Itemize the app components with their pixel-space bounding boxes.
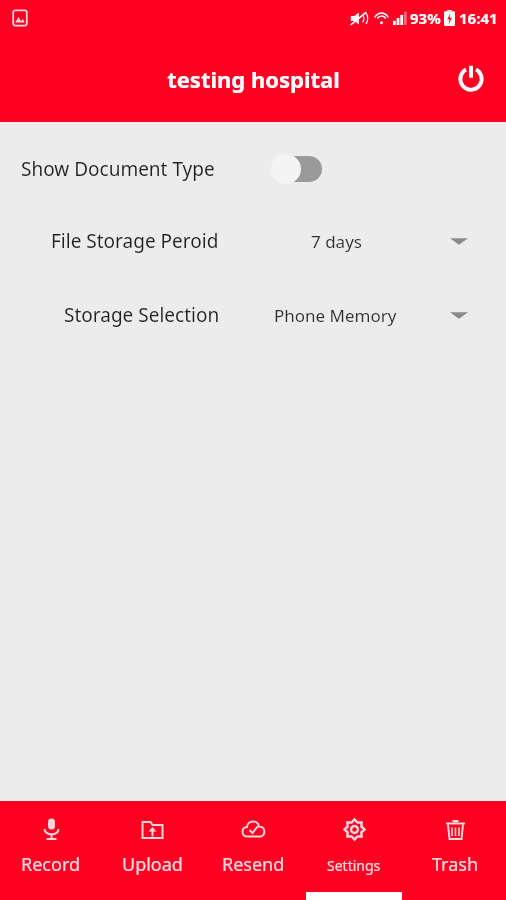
button[interactable]: Settings xyxy=(304,801,404,900)
staticText: 16:41 xyxy=(459,8,498,28)
button[interactable]: Storage Selection xyxy=(0,291,506,339)
staticText: Phone Memory xyxy=(274,304,397,327)
button[interactable]: Power / Logout xyxy=(448,56,494,102)
button[interactable]: Upload xyxy=(102,801,202,900)
staticText: Settings xyxy=(327,856,381,875)
staticText: Resend xyxy=(222,852,285,877)
staticText: Show Document Type xyxy=(21,156,215,182)
staticText: 93% xyxy=(410,8,441,28)
staticText: testing hospital xyxy=(167,64,340,94)
staticText: Trash xyxy=(432,852,479,877)
staticText: Storage Selection xyxy=(64,302,220,328)
button[interactable]: Record xyxy=(1,801,101,900)
button[interactable]: Resend xyxy=(203,801,303,900)
button[interactable]: Trash xyxy=(405,801,505,900)
staticText: File Storage Peroid xyxy=(51,228,219,254)
button[interactable]: File Storage Peroid xyxy=(0,217,506,265)
staticText: Record xyxy=(21,852,81,877)
button[interactable]: Show Document Type toggle xyxy=(270,152,324,186)
staticText: Upload xyxy=(122,852,183,877)
staticText: 7 days xyxy=(311,230,362,253)
